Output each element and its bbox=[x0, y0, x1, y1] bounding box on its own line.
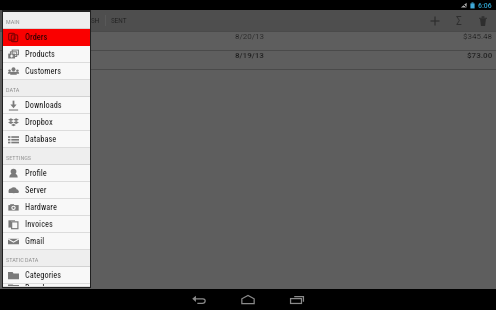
button[interactable]: Home bbox=[230, 289, 266, 310]
button[interactable]: Products bbox=[3, 46, 90, 63]
button[interactable]: Sum bbox=[447, 10, 471, 31]
staticText: 8/20/13 bbox=[235, 32, 265, 41]
button[interactable]: Database bbox=[3, 131, 90, 148]
staticText: MAIN bbox=[6, 18, 20, 25]
button[interactable]: Hardware bbox=[3, 199, 90, 216]
staticText: Server bbox=[25, 185, 47, 195]
staticText: Brands bbox=[25, 283, 49, 286]
staticText: Profile bbox=[25, 168, 47, 178]
button[interactable]: 8/19/13 bbox=[0, 51, 496, 70]
staticText: STATIC DATA bbox=[6, 256, 39, 263]
button[interactable]: Add bbox=[423, 10, 447, 31]
button[interactable]: SH bbox=[89, 10, 102, 31]
staticText: SENT bbox=[111, 17, 127, 24]
button[interactable]: Delete bbox=[471, 10, 495, 31]
staticText: 6:06 bbox=[478, 1, 492, 10]
button[interactable]: Downloads bbox=[3, 97, 90, 114]
button[interactable]: Server bbox=[3, 182, 90, 199]
staticText: Products bbox=[25, 49, 55, 59]
staticText: Hardware bbox=[25, 202, 57, 212]
button[interactable]: Recents bbox=[279, 289, 315, 310]
staticText: DATA bbox=[6, 86, 20, 93]
staticText: Orders bbox=[25, 32, 48, 42]
staticText: Σ bbox=[456, 14, 463, 28]
staticText: SETTINGS bbox=[6, 154, 32, 161]
staticText: Customers bbox=[25, 66, 62, 76]
button[interactable]: Orders bbox=[3, 29, 90, 46]
button[interactable]: Profile bbox=[3, 165, 90, 182]
button[interactable]: Categories bbox=[3, 267, 90, 284]
staticText: Downloads bbox=[25, 100, 62, 110]
button[interactable]: 8/20/13 bbox=[0, 32, 496, 51]
staticText: Categories bbox=[25, 270, 62, 280]
staticText: $73.00 bbox=[467, 51, 493, 60]
button[interactable]: Gmail bbox=[3, 233, 90, 250]
button[interactable]: Brands bbox=[3, 284, 90, 287]
staticText: $345.48 bbox=[463, 32, 493, 41]
staticText: Dropbox bbox=[25, 117, 53, 127]
staticText: Gmail bbox=[25, 236, 45, 246]
button[interactable]: Invoices bbox=[3, 216, 90, 233]
staticText: SH bbox=[91, 17, 100, 24]
button[interactable]: Dropbox bbox=[3, 114, 90, 131]
button[interactable]: Customers bbox=[3, 63, 90, 80]
staticText: Database bbox=[25, 134, 57, 144]
staticText: 8/19/13 bbox=[235, 51, 264, 60]
button[interactable]: Back bbox=[181, 289, 217, 310]
staticText: Invoices bbox=[25, 219, 53, 229]
button[interactable]: SENT bbox=[106, 10, 132, 31]
